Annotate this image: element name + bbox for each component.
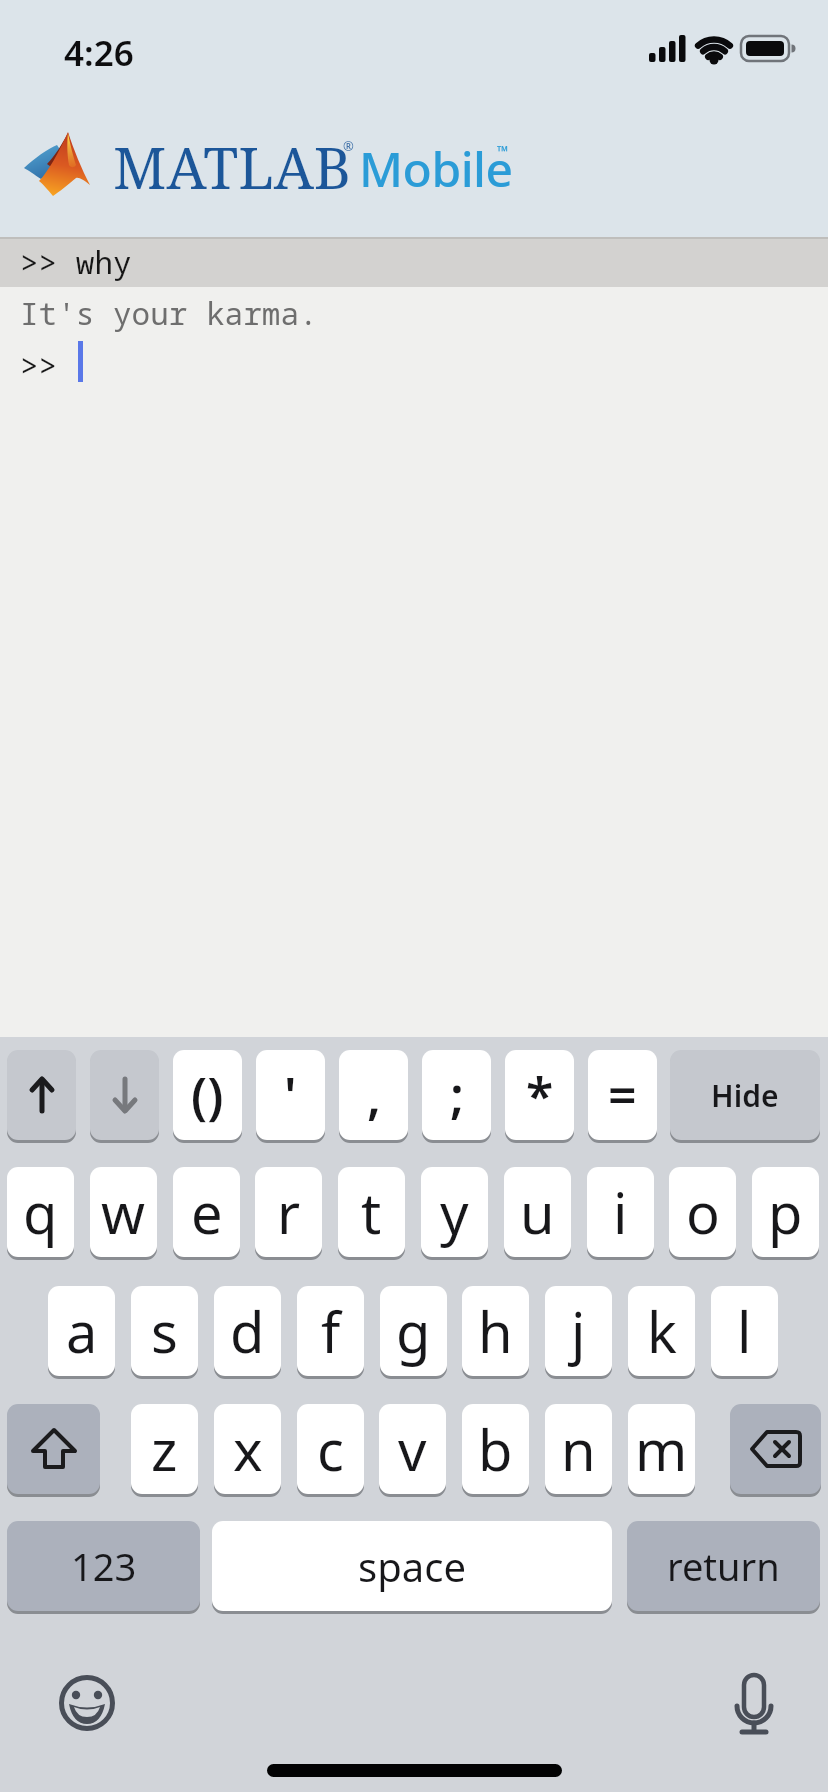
staticText: ™: [497, 141, 509, 161]
staticText: d: [230, 1293, 265, 1369]
staticText: >> why: [20, 241, 132, 283]
staticText: 4:26: [64, 29, 134, 77]
staticText: q: [23, 1174, 58, 1250]
staticText: p: [768, 1174, 803, 1250]
staticText: space: [358, 1539, 466, 1593]
button[interactable]: [59, 1675, 115, 1731]
staticText: It's your karma.: [20, 292, 318, 334]
button[interactable]: d: [214, 1286, 281, 1376]
staticText: r: [277, 1174, 301, 1250]
button[interactable]: n: [545, 1404, 612, 1494]
button[interactable]: 123: [7, 1521, 200, 1611]
staticText: m: [635, 1411, 688, 1487]
button[interactable]: l: [711, 1286, 778, 1376]
button[interactable]: >> why: [0, 237, 828, 287]
staticText: z: [151, 1411, 178, 1487]
button[interactable]: z: [131, 1404, 198, 1494]
button[interactable]: (): [173, 1050, 242, 1140]
button[interactable]: [7, 1404, 100, 1494]
button[interactable]: j: [545, 1286, 612, 1376]
button[interactable]: return: [627, 1521, 820, 1611]
staticText: >>: [20, 344, 58, 386]
button[interactable]: r: [255, 1167, 322, 1257]
staticText: w: [101, 1174, 146, 1250]
staticText: ;: [450, 1061, 464, 1129]
staticText: e: [191, 1174, 223, 1250]
staticText: c: [317, 1411, 344, 1487]
staticText: g: [396, 1293, 431, 1369]
button[interactable]: m: [628, 1404, 695, 1494]
staticText: b: [478, 1411, 513, 1487]
staticText: f: [321, 1293, 341, 1369]
staticText: 123: [71, 1540, 137, 1592]
button[interactable]: q: [7, 1167, 74, 1257]
staticText: l: [737, 1293, 752, 1369]
button[interactable]: c: [297, 1404, 364, 1494]
button[interactable]: b: [462, 1404, 529, 1494]
staticText: =: [608, 1061, 637, 1129]
button[interactable]: w: [90, 1167, 157, 1257]
button[interactable]: y: [421, 1167, 488, 1257]
button[interactable]: ': [256, 1050, 325, 1140]
staticText: (): [191, 1061, 224, 1129]
button[interactable]: k: [628, 1286, 695, 1376]
staticText: *: [526, 1061, 554, 1129]
button[interactable]: ;: [422, 1050, 491, 1140]
button[interactable]: [7, 1050, 76, 1140]
staticText: ,: [367, 1061, 381, 1129]
staticText: u: [520, 1174, 555, 1250]
button[interactable]: s: [131, 1286, 198, 1376]
staticText: Mobile: [359, 136, 513, 201]
staticText: x: [233, 1411, 263, 1487]
staticText: s: [151, 1293, 178, 1369]
button[interactable]: Hide: [670, 1050, 820, 1140]
button[interactable]: [90, 1050, 159, 1140]
button[interactable]: u: [504, 1167, 571, 1257]
button[interactable]: p: [752, 1167, 819, 1257]
staticText: h: [478, 1293, 513, 1369]
staticText: return: [667, 1540, 780, 1592]
button[interactable]: t: [338, 1167, 405, 1257]
staticText: ': [284, 1061, 297, 1129]
button[interactable]: space: [212, 1521, 612, 1611]
staticText: ®: [343, 137, 354, 155]
staticText: t: [361, 1174, 382, 1250]
button[interactable]: i: [587, 1167, 654, 1257]
button[interactable]: f: [297, 1286, 364, 1376]
staticText: MATLAB: [113, 128, 352, 206]
button[interactable]: [730, 1404, 821, 1494]
staticText: n: [561, 1411, 596, 1487]
button[interactable]: [733, 1672, 775, 1738]
button[interactable]: o: [669, 1167, 736, 1257]
staticText: i: [613, 1174, 628, 1250]
button[interactable]: *: [505, 1050, 574, 1140]
staticText: k: [647, 1293, 677, 1369]
staticText: a: [66, 1293, 98, 1369]
staticText: v: [398, 1411, 427, 1487]
button[interactable]: =: [588, 1050, 657, 1140]
button[interactable]: h: [462, 1286, 529, 1376]
staticText: Hide: [711, 1075, 779, 1116]
button[interactable]: e: [173, 1167, 240, 1257]
staticText: o: [686, 1174, 720, 1250]
button[interactable]: a: [48, 1286, 115, 1376]
staticText: y: [440, 1174, 469, 1250]
button[interactable]: v: [379, 1404, 446, 1494]
button[interactable]: ,: [339, 1050, 408, 1140]
staticText: j: [571, 1293, 586, 1369]
button[interactable]: x: [214, 1404, 281, 1494]
button[interactable]: g: [380, 1286, 447, 1376]
